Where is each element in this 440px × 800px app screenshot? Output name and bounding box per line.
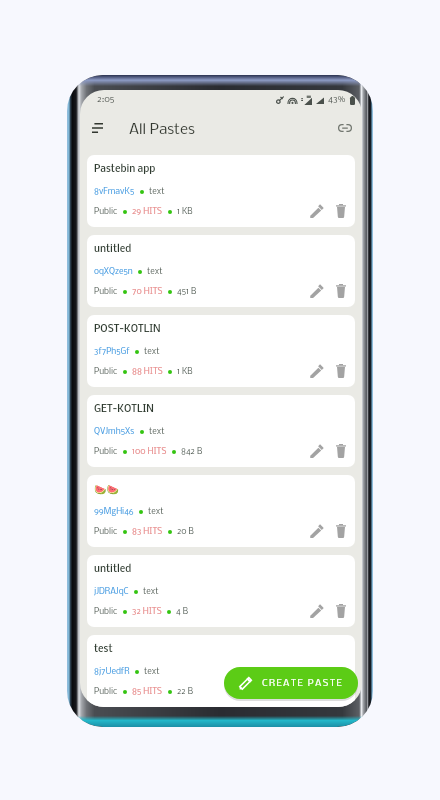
button[interactable]: Delete paste [329, 199, 353, 223]
staticText: 32 HITS [132, 607, 162, 616]
staticText: 88 HITS [132, 367, 163, 376]
staticText: Public [94, 607, 118, 616]
button[interactable]: GET-KOTLIN [87, 395, 355, 467]
button[interactable]: Delete paste [329, 519, 353, 543]
staticText: Public [94, 207, 118, 216]
staticText: 43% [328, 95, 346, 105]
staticText: text [147, 267, 163, 276]
staticText: POST-KOTLIN [94, 324, 161, 335]
staticText: text [149, 427, 165, 436]
staticText: All Pastes [129, 122, 195, 138]
staticText: text [143, 587, 159, 596]
staticText: text [144, 667, 160, 676]
button[interactable]: Edit paste [305, 679, 329, 703]
button[interactable]: Copy link [333, 116, 357, 140]
staticText: QVJmh5Xs [94, 427, 135, 436]
button[interactable]: Edit paste [305, 439, 329, 463]
staticText: 83 HITS [132, 527, 163, 536]
button[interactable]: Delete paste [329, 599, 353, 623]
button[interactable]: 🍉🍉 [87, 475, 355, 547]
button[interactable]: untitled [87, 555, 355, 627]
staticText: untitled [94, 244, 132, 255]
staticText: GET-KOTLIN [94, 404, 154, 415]
staticText: Public [94, 687, 118, 696]
button[interactable]: Edit paste [305, 599, 329, 623]
button[interactable]: POST-KOTLIN [87, 315, 355, 387]
staticText: untitled [94, 564, 132, 575]
button[interactable]: test [87, 635, 355, 707]
staticText: jJDRAJqC [94, 587, 129, 596]
staticText: 85 HITS [132, 687, 163, 696]
staticText: 20 B [177, 527, 194, 536]
staticText: 8j7UedfR [94, 667, 130, 676]
staticText: Public [94, 287, 118, 296]
button[interactable]: Edit paste [305, 519, 329, 543]
button[interactable]: Edit paste [305, 279, 329, 303]
button[interactable]: Delete paste [329, 679, 353, 703]
staticText: 1 KB [177, 367, 193, 376]
staticText: 22 B [177, 687, 193, 696]
button[interactable]: Delete paste [329, 439, 353, 463]
staticText: test [94, 644, 113, 655]
staticText: Public [94, 367, 118, 376]
button[interactable]: Pastebin app [87, 155, 355, 227]
button[interactable]: Delete paste [329, 359, 353, 383]
staticText: text [148, 507, 164, 516]
button[interactable]: untitled [87, 235, 355, 307]
staticText: 99MgHi46 [94, 507, 134, 516]
staticText: 2:05 [97, 95, 115, 105]
staticText: text [144, 347, 160, 356]
staticText: 70 HITS [132, 287, 163, 296]
staticText: 4 B [176, 607, 189, 616]
staticText: 451 B [177, 287, 197, 296]
staticText: 842 B [181, 447, 203, 456]
button[interactable]: Edit paste [305, 199, 329, 223]
staticText: 8vFmavK5 [94, 187, 135, 196]
staticText: oqXQze5n [94, 267, 133, 276]
staticText: 1 KB [177, 207, 193, 216]
staticText: 100 HITS [132, 447, 167, 456]
staticText: CREATE PASTE [262, 678, 344, 688]
staticText: 29 HITS [132, 207, 163, 216]
staticText: 3f7Ph5Gf [94, 347, 130, 356]
button[interactable]: Delete paste [329, 279, 353, 303]
staticText: Public [94, 447, 118, 456]
button[interactable]: Open navigation menu [84, 115, 110, 141]
staticText: 🍉🍉 [94, 484, 119, 496]
staticText: Pastebin app [94, 164, 156, 175]
staticText: text [149, 187, 165, 196]
button[interactable]: Edit paste [305, 359, 329, 383]
button[interactable]: CREATE PASTE [224, 667, 358, 699]
staticText: Public [94, 527, 118, 536]
